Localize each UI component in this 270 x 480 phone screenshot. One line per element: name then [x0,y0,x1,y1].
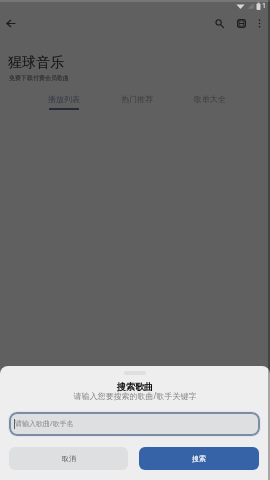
button[interactable]: More options [247,11,270,35]
staticText: 猩球音乐 [8,54,64,72]
button[interactable]: 取消 [9,447,128,470]
button[interactable]: Search [207,11,231,35]
staticText: 1 [262,1,267,11]
staticText: 歌单大全 [194,94,226,104]
button[interactable]: 播放列表 [27,94,100,110]
button[interactable]: 搜索 [139,447,259,470]
button[interactable]: 请输入歌曲/歌手名 [9,412,260,436]
staticText: 播放列表 [48,94,80,104]
staticText: 猩球音乐 [8,54,64,72]
staticText: 热门推荐 [121,94,153,104]
staticText: 搜索歌曲 [0,381,270,392]
staticText: 取消 [62,454,76,463]
button[interactable]: 热门推荐 [100,94,173,108]
button[interactable]: Scan code [229,11,253,35]
button[interactable]: Back [0,11,23,35]
staticText: 搜索 [192,454,206,463]
staticText: 免费下载付费会员歌曲 [9,74,69,82]
staticText: 免费下载付费会员歌曲 [9,74,69,82]
staticText: 请输入歌曲/歌手名 [15,419,74,429]
button[interactable]: 歌单大全 [173,94,246,108]
staticText: 请输入您要搜索的歌曲/歌手关键字 [0,390,270,401]
staticText: 搜索歌曲 [0,381,270,392]
